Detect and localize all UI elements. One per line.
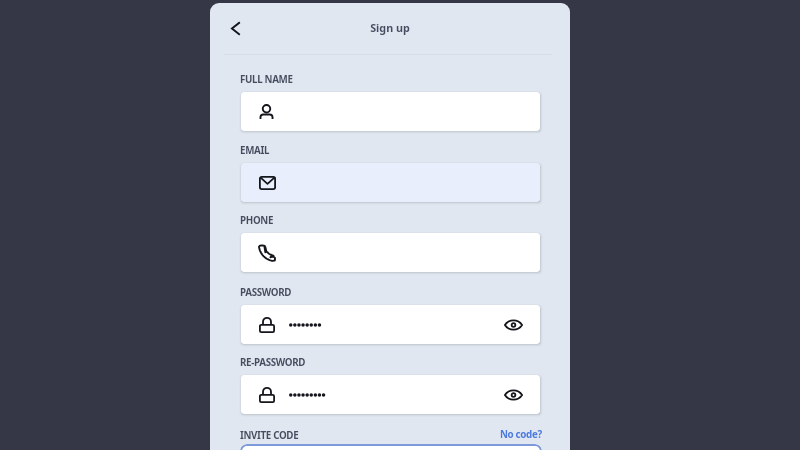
- button[interactable]: Back: [218, 11, 252, 45]
- staticText: RE-PASSWORD: [240, 356, 306, 369]
- staticText: PASSWORD: [240, 286, 292, 299]
- button[interactable]: Show password: [241, 305, 540, 344]
- button[interactable]: Show password: [495, 375, 531, 414]
- button[interactable]: Show password: [495, 305, 531, 344]
- staticText: PHONE: [240, 214, 274, 227]
- button[interactable]: Show password: [241, 375, 540, 414]
- staticText: EMAIL: [240, 144, 270, 157]
- button[interactable]: [240, 444, 542, 450]
- staticText: No code?: [500, 428, 542, 441]
- staticText: FULL NAME: [240, 73, 293, 86]
- button[interactable]: [241, 163, 540, 202]
- button[interactable]: [241, 233, 540, 272]
- button[interactable]: No code?: [425, 425, 542, 443]
- button[interactable]: [241, 92, 540, 131]
- staticText: INVITE CODE: [240, 429, 299, 442]
- staticText: Sign up: [210, 20, 570, 35]
